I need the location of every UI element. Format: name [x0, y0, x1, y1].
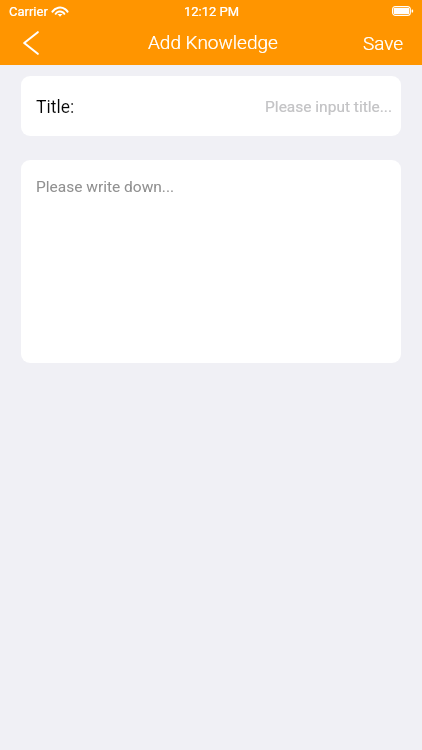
staticText: 12:12 PM	[184, 4, 240, 19]
other: Wi-Fi signal	[52, 6, 68, 17]
other: Battery full	[392, 6, 414, 16]
staticText: Add Knowledge	[148, 31, 278, 53]
button[interactable]: Save	[345, 26, 422, 60]
button[interactable]: Please write down...	[21, 160, 401, 363]
staticText: Carrier	[9, 4, 48, 19]
staticText: Please input title...	[83, 98, 392, 116]
staticText: Title:	[36, 97, 75, 118]
button[interactable]: Back	[14, 26, 48, 60]
staticText: Save	[363, 32, 404, 54]
staticText: Please write down...	[36, 178, 175, 196]
button[interactable]: Title:	[21, 76, 401, 136]
